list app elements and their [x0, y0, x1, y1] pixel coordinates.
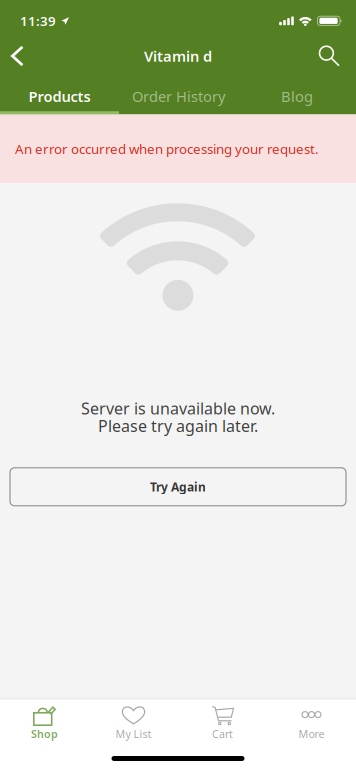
staticText: An error occurred when processing your r…: [15, 140, 319, 158]
staticText: Order History: [132, 86, 225, 106]
staticText: Please try again later.: [98, 415, 258, 436]
staticText: More: [298, 727, 324, 741]
staticText: Server is unavailable now.: [81, 398, 275, 419]
button[interactable]: Back: [0, 34, 42, 78]
button[interactable]: Shop: [0, 699, 89, 741]
button[interactable]: Products: [0, 78, 119, 114]
staticText: Try Again: [150, 479, 206, 495]
staticText: Products: [28, 86, 90, 106]
button[interactable]: Cart: [178, 699, 267, 741]
button[interactable]: Blog: [238, 78, 356, 114]
staticText: Shop: [31, 727, 58, 741]
staticText: Vitamin d: [144, 46, 212, 66]
button[interactable]: Search: [300, 34, 356, 78]
button[interactable]: Try Again: [10, 468, 346, 506]
button[interactable]: My List: [89, 699, 178, 741]
button[interactable]: More: [267, 699, 356, 741]
staticText: Blog: [281, 86, 313, 106]
button[interactable]: Order History: [119, 78, 238, 114]
staticText: 11:39: [20, 12, 56, 30]
staticText: My List: [115, 727, 151, 741]
staticText: Cart: [212, 727, 233, 741]
